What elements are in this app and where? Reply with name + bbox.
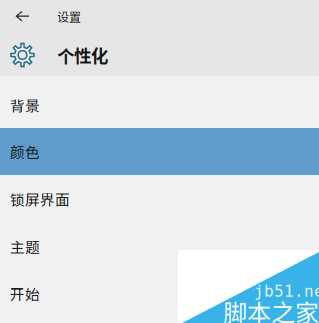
staticText: 背景 (10, 94, 40, 116)
button[interactable]: 背景 (0, 82, 319, 128)
staticText: 主题 (10, 236, 40, 257)
staticText: 锁屏界面 (10, 188, 70, 210)
button[interactable]: 主题 (0, 223, 319, 270)
button[interactable]: 开始 (0, 270, 319, 317)
button[interactable]: 锁屏界面 (0, 175, 319, 223)
staticText: jb51.net (254, 282, 319, 301)
staticText: 颜色 (10, 141, 40, 162)
staticText: 开始 (10, 283, 40, 304)
staticText: 个性化 (57, 42, 108, 68)
button[interactable]: 颜色 (0, 128, 319, 175)
staticText: 设置 (57, 8, 81, 25)
button[interactable]: Back to Settings (0, 0, 319, 33)
staticText: 脚本之家 (223, 294, 319, 323)
